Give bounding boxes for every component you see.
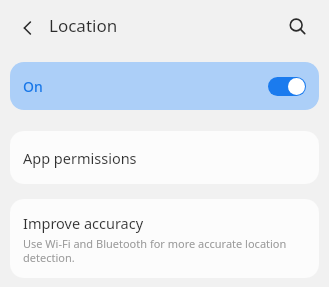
staticText: Improve accuracy	[23, 213, 144, 233]
staticText: Location	[49, 14, 118, 37]
staticText: Use Wi-Fi and Bluetooth for more accurat…	[23, 236, 303, 265]
button[interactable]: On	[10, 62, 319, 110]
button[interactable]: Location on	[268, 77, 306, 96]
button[interactable]: Search	[282, 11, 312, 41]
button[interactable]: Improve accuracy	[10, 199, 319, 278]
button[interactable]: App permissions	[10, 131, 319, 184]
staticText: App permissions	[23, 148, 137, 168]
button[interactable]: Back	[12, 12, 44, 44]
staticText: On	[23, 77, 43, 96]
